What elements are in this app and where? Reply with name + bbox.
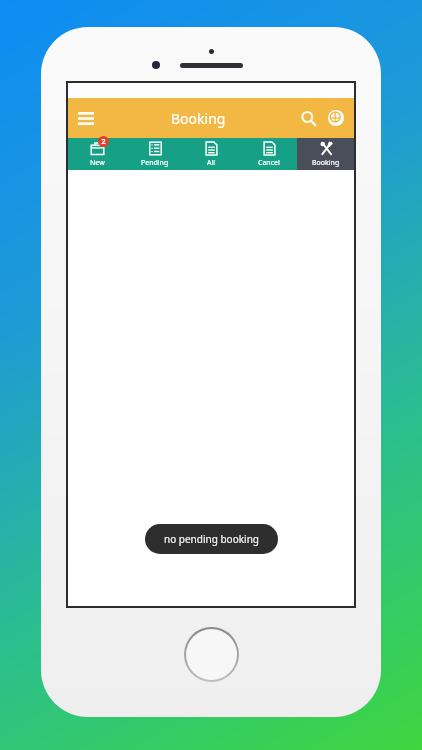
button[interactable]: Menu — [68, 104, 104, 133]
staticText: Pending — [141, 158, 169, 168]
button[interactable]: All — [183, 138, 240, 170]
button[interactable]: 2 — [68, 138, 126, 170]
staticText: 2 — [101, 137, 106, 147]
button[interactable]: Booking — [297, 138, 354, 170]
button[interactable]: Cancel — [240, 138, 297, 170]
button[interactable]: Search — [293, 103, 324, 134]
staticText: Booking — [312, 158, 340, 168]
staticText: no pending booking — [164, 532, 259, 546]
staticText: All — [207, 158, 216, 168]
staticText: Cancel — [258, 158, 280, 168]
staticText: New — [90, 158, 105, 168]
button[interactable]: Language — [324, 102, 354, 134]
staticText: Booking — [171, 109, 226, 128]
button[interactable]: Pending — [126, 138, 183, 170]
